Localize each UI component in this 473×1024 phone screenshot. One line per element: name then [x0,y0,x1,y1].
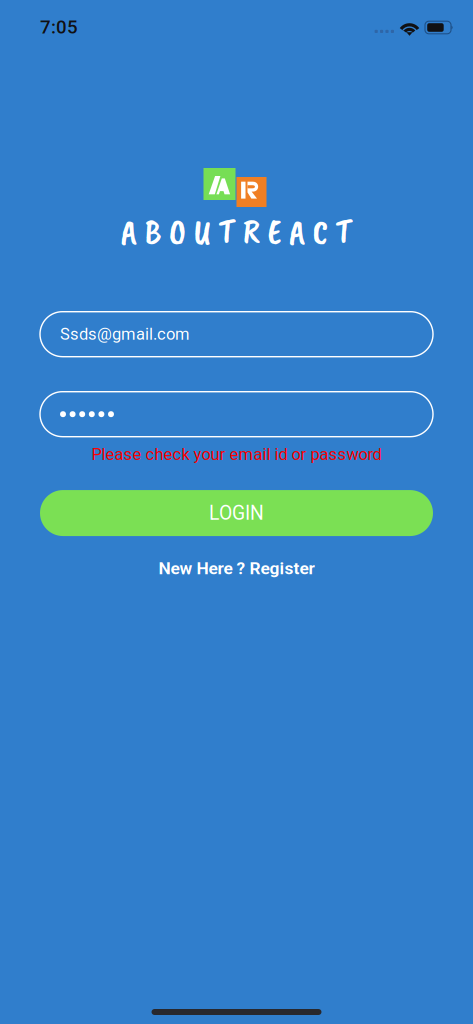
button[interactable]: Ssds@gmail.com [40,312,433,357]
staticText: Please check your email id or password [91,445,381,464]
staticText: ABOUTREACT [121,210,352,254]
button[interactable] [40,392,433,437]
staticText: Ssds@gmail.com [60,324,190,344]
button[interactable]: New Here ? Register [148,554,324,582]
button[interactable]: LOGIN [40,490,433,536]
staticText: New Here ? Register [158,558,314,578]
staticText: LOGIN [209,502,264,524]
staticText: 7:05 [40,16,78,38]
